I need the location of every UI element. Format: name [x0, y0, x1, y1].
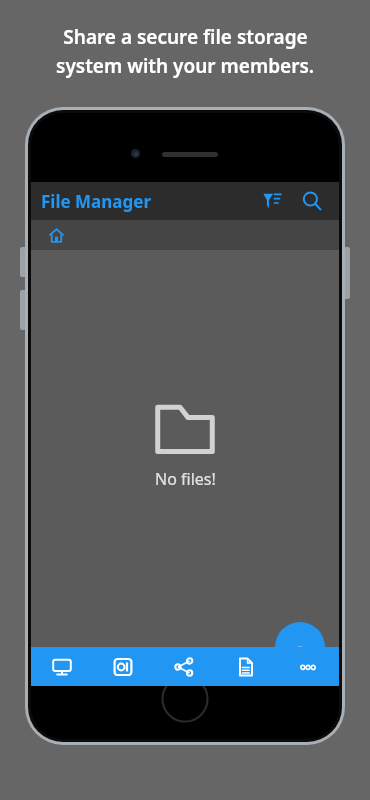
button[interactable]: Devices	[31, 647, 92, 686]
staticText: system with your members.	[56, 53, 314, 79]
button[interactable]: Shared	[153, 647, 215, 686]
button[interactable]: Filter	[255, 184, 289, 218]
staticText: No files!	[155, 468, 216, 490]
button[interactable]: Documents	[215, 647, 277, 686]
button[interactable]: More	[277, 647, 339, 686]
staticText: File Manager	[41, 190, 151, 213]
button[interactable]: Search	[295, 184, 329, 218]
staticText: Share a secure file storage	[63, 24, 308, 50]
button[interactable]: Add	[275, 622, 325, 672]
button[interactable]: Vault	[92, 647, 153, 686]
button[interactable]: Home folder	[43, 222, 69, 248]
button[interactable]: Home button	[161, 675, 209, 723]
